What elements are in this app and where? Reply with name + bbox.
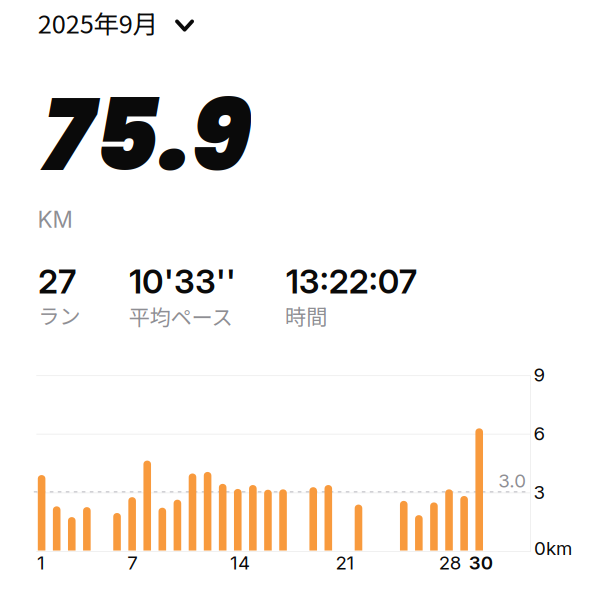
staticText: 0km (534, 537, 572, 559)
staticText: 平均ペース (128, 301, 232, 331)
staticText: 30 (469, 551, 493, 574)
button[interactable]: 2025年9月 (0, 0, 600, 600)
staticText: 7 (127, 551, 138, 574)
staticText: 13:22:07 (286, 261, 417, 301)
staticText: 3 (534, 481, 546, 503)
staticText: 10'33'' (129, 261, 236, 301)
staticText: 6 (534, 422, 546, 445)
staticText: ラン (38, 300, 80, 330)
staticText: 75.9 (42, 65, 251, 205)
staticText: 3.0 (498, 469, 526, 492)
staticText: 27 (38, 261, 76, 301)
staticText: 14 (230, 551, 250, 574)
staticText: KM (37, 206, 72, 233)
staticText: 28 (439, 551, 462, 574)
staticText: 9 (534, 363, 546, 386)
staticText: 時間 (285, 300, 327, 331)
staticText: 21 (335, 551, 354, 574)
staticText: 2025年9月 (38, 4, 158, 41)
staticText: 1 (37, 551, 45, 574)
